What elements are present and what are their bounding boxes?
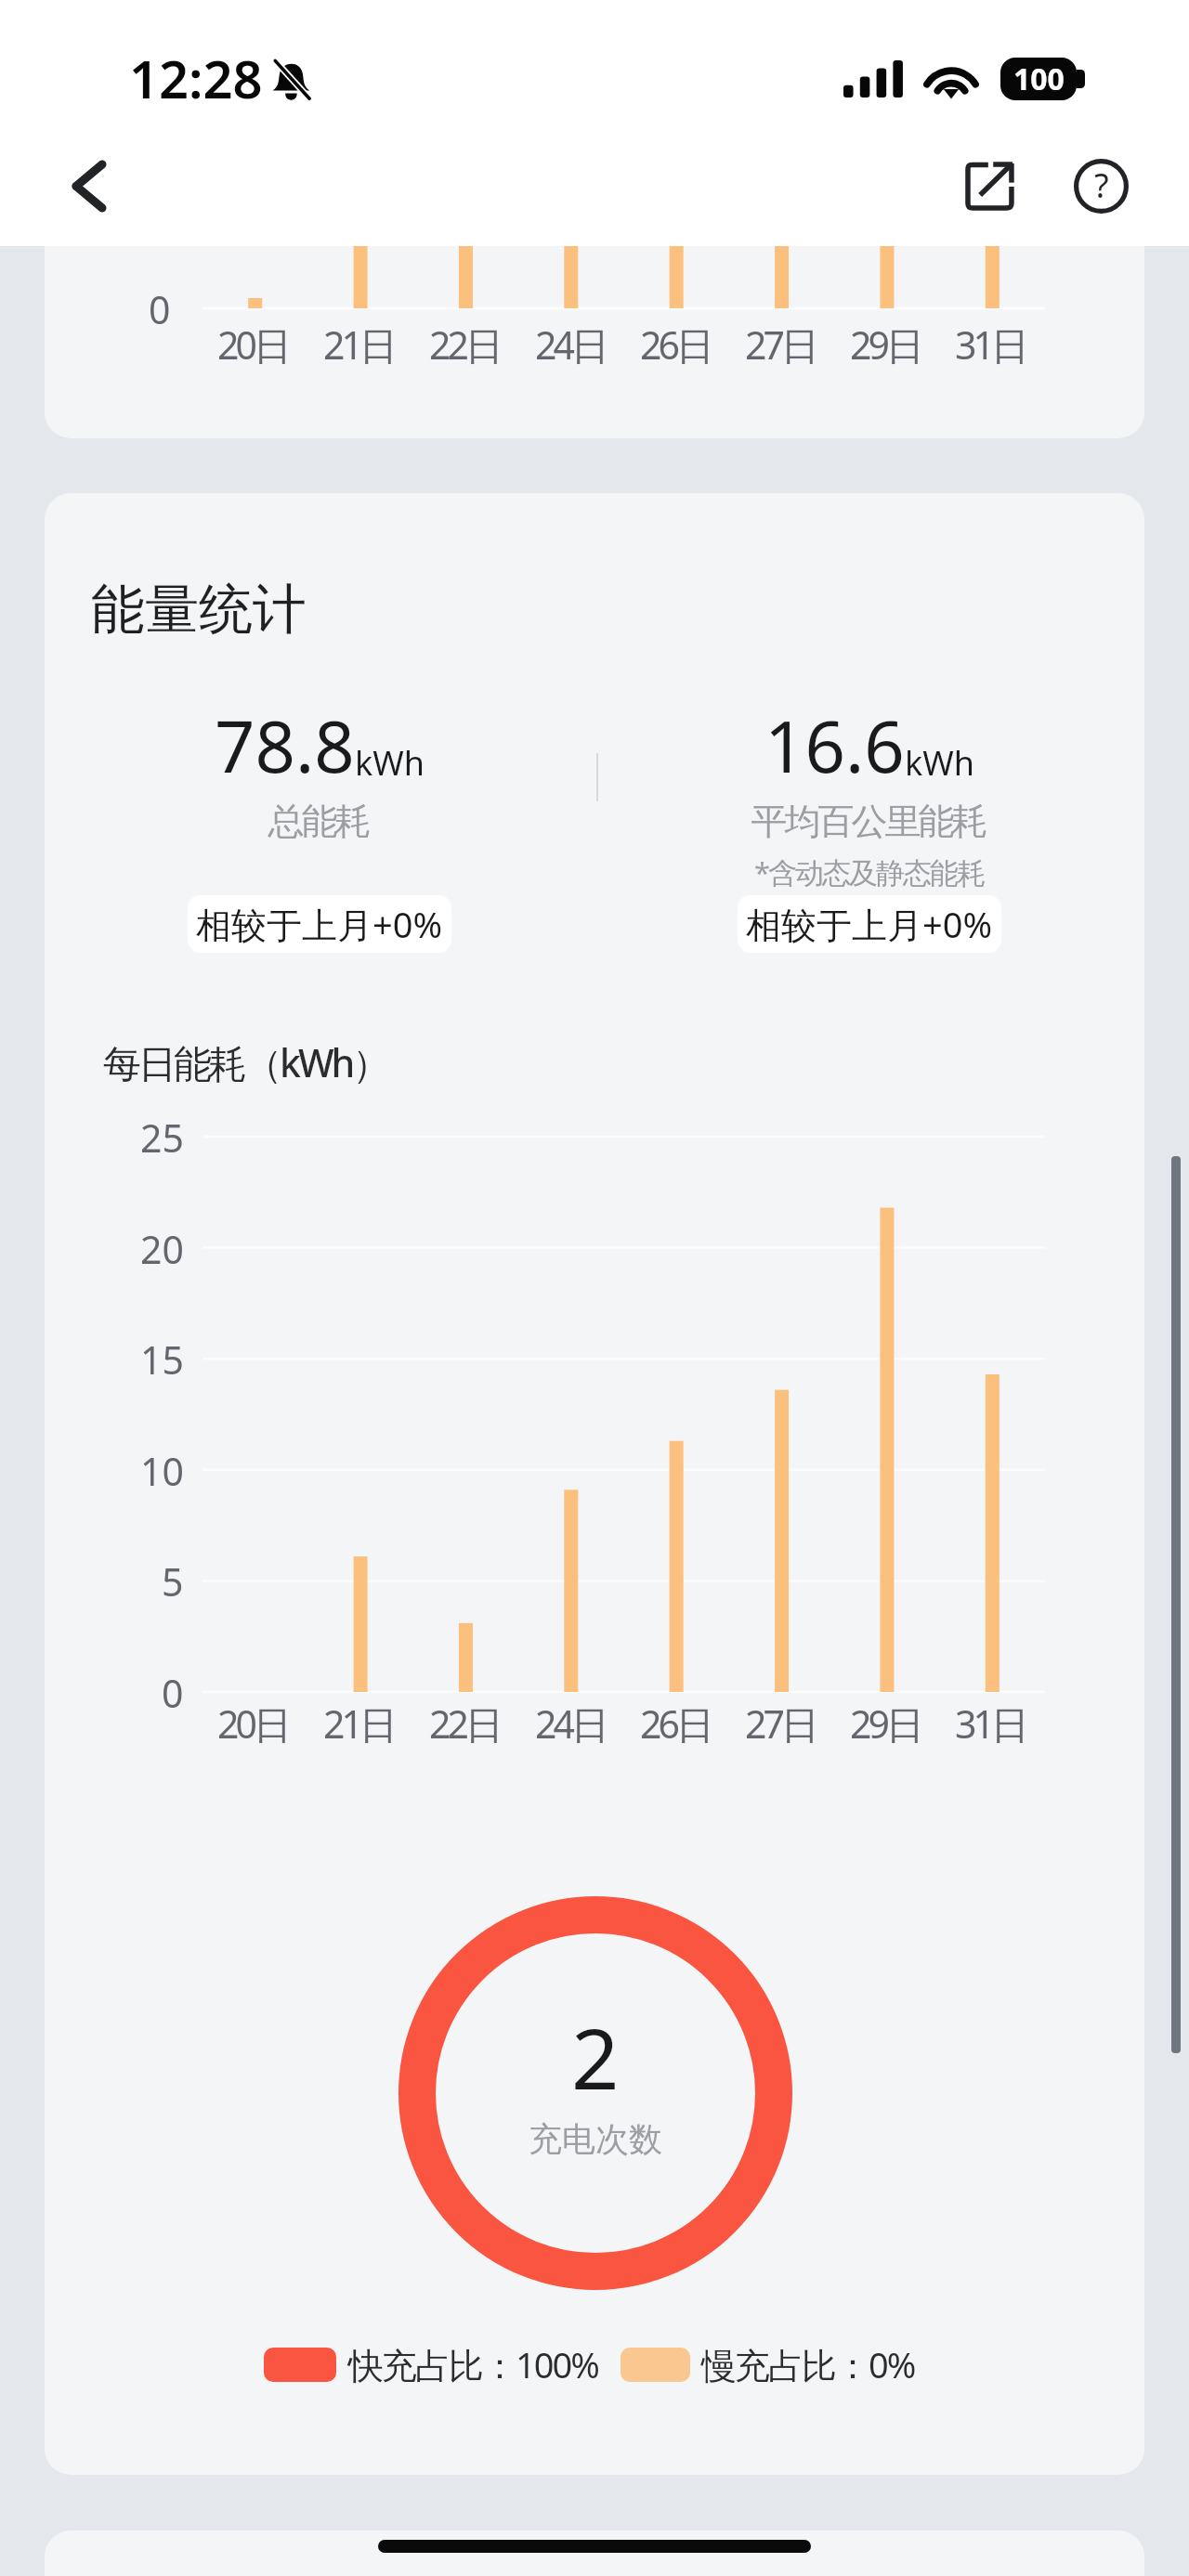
staticText: 0 xyxy=(149,283,171,335)
button[interactable]: Share xyxy=(944,144,1037,228)
staticText: 26日 xyxy=(640,1698,711,1750)
staticText: 22日 xyxy=(429,319,500,371)
staticText: 78.8 xyxy=(215,697,355,794)
staticText: 0 xyxy=(162,1667,184,1719)
staticText: 5 xyxy=(162,1555,184,1607)
staticText: 24日 xyxy=(535,319,606,371)
staticText: 22日 xyxy=(429,1698,500,1750)
staticText: kWh xyxy=(905,740,974,786)
staticText: 26日 xyxy=(640,319,711,371)
staticText: *含动态及静态能耗 xyxy=(754,852,985,891)
staticText: 31日 xyxy=(955,319,1026,371)
staticText: 27日 xyxy=(745,319,816,371)
staticText: 29日 xyxy=(850,319,921,371)
staticText: 20 xyxy=(140,1223,184,1275)
staticText: kWh xyxy=(355,740,425,786)
staticText: 相较于上月+0% xyxy=(196,900,443,948)
staticText: 21日 xyxy=(323,1698,394,1750)
staticText: 慢充占比：0% xyxy=(701,2340,915,2388)
staticText: 每日能耗（kWh） xyxy=(103,1036,388,1088)
button[interactable]: Help xyxy=(1054,144,1147,228)
staticText: 20日 xyxy=(217,1698,288,1750)
staticText: 相较于上月+0% xyxy=(746,900,993,948)
staticText: 15 xyxy=(140,1334,184,1386)
staticText: 12:28 xyxy=(129,43,263,113)
staticText: 平均百公里能耗 xyxy=(752,799,986,844)
staticText: 25 xyxy=(140,1112,184,1164)
staticText: 16.6 xyxy=(764,697,905,794)
staticText: 100 xyxy=(1013,59,1065,99)
staticText: 31日 xyxy=(955,1698,1026,1750)
staticText: 29日 xyxy=(850,1698,921,1750)
staticText: 21日 xyxy=(323,319,394,371)
staticText: ? xyxy=(1094,163,1109,208)
button[interactable]: Back xyxy=(43,144,136,228)
staticText: 24日 xyxy=(535,1698,606,1750)
staticText: 2 xyxy=(571,2000,620,2114)
staticText: 充电次数 xyxy=(529,2118,662,2160)
staticText: 总能耗 xyxy=(269,799,370,844)
staticText: 20日 xyxy=(217,319,288,371)
staticText: 快充占比：100% xyxy=(348,2340,598,2388)
staticText: 能量统计 xyxy=(91,576,307,644)
staticText: 27日 xyxy=(745,1698,816,1750)
staticText: 10 xyxy=(140,1445,184,1497)
